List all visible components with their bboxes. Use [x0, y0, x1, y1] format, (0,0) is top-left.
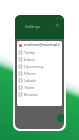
- staticText: Inbox: [24, 57, 35, 62]
- button[interactable]: Team: [19, 84, 60, 91]
- button[interactable]: andrew@example.com: [19, 42, 60, 48]
- staticText: Settings: [25, 24, 41, 29]
- button[interactable]: Today: [19, 49, 60, 56]
- button[interactable]: Search: [56, 24, 59, 27]
- staticText: Today: [24, 50, 36, 55]
- staticText: Labels: [24, 78, 37, 83]
- staticText: Upcoming: [24, 64, 44, 69]
- button[interactable]: Inbox: [19, 56, 60, 63]
- staticText: andrew@example.com: [24, 42, 60, 48]
- button[interactable]: Labels: [19, 77, 60, 84]
- staticText: Browse: [24, 92, 38, 97]
- button[interactable]: Add: [57, 114, 64, 122]
- button[interactable]: Upcoming: [19, 63, 60, 70]
- button[interactable]: Browse: [19, 91, 60, 98]
- staticText: Team: [24, 85, 35, 90]
- staticText: Filters: [24, 71, 36, 76]
- button[interactable]: Filters: [19, 70, 60, 77]
